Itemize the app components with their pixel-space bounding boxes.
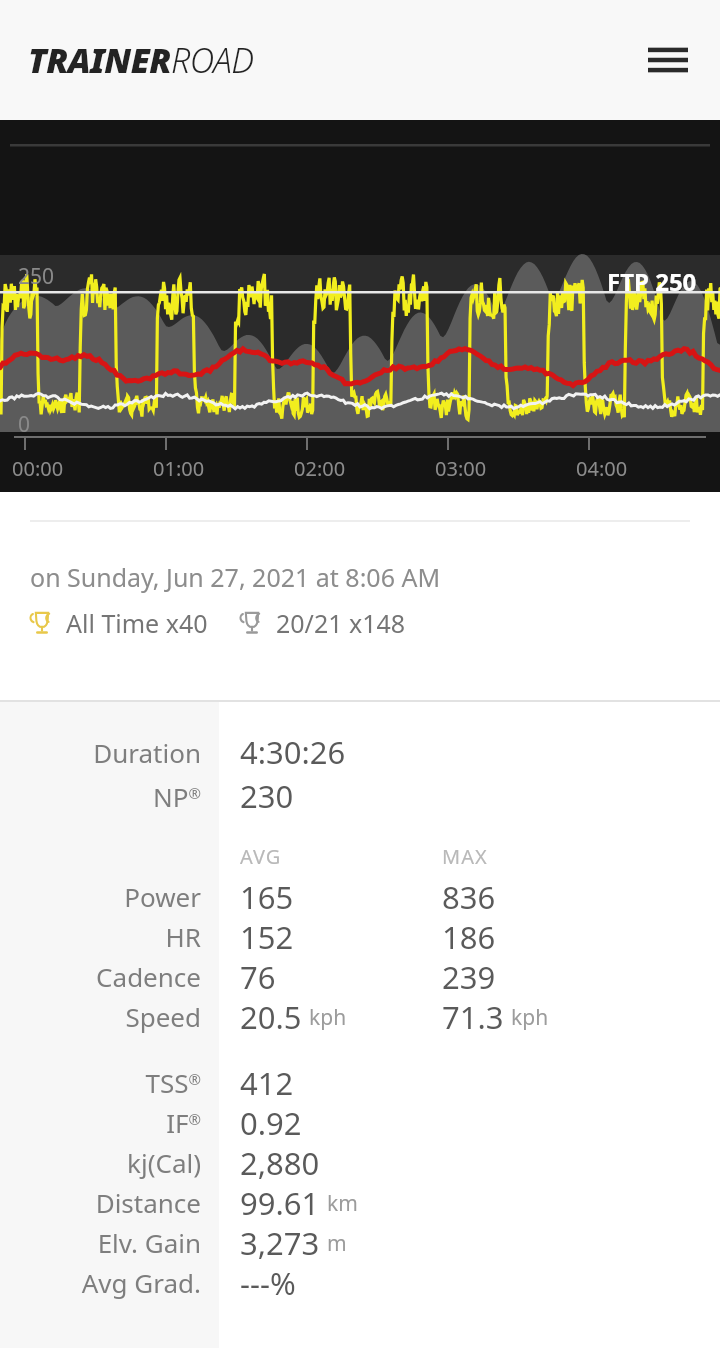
staticText: 0.92: [240, 1102, 302, 1142]
staticText: Distance: [95, 1185, 201, 1220]
button[interactable]: Menu: [640, 32, 696, 88]
staticText: Power: [124, 879, 201, 914]
staticText: km: [327, 1189, 358, 1218]
staticText: 04:00: [576, 455, 628, 482]
staticText: Duration: [93, 735, 201, 770]
staticText: TSS®: [145, 1065, 201, 1100]
staticText: 239: [442, 956, 496, 996]
staticText: FTP 250: [607, 265, 697, 298]
button[interactable]: Duration: [0, 730, 720, 774]
staticText: HR: [165, 919, 201, 954]
staticText: 2,880: [240, 1142, 320, 1182]
button[interactable]: Power: [0, 876, 720, 916]
staticText: MAX: [442, 843, 488, 870]
staticText: NP®: [153, 779, 201, 814]
button[interactable]: Distance: [0, 1182, 720, 1222]
staticText: All Time x40: [66, 606, 208, 640]
button[interactable]: TSS®: [0, 1062, 720, 1102]
button[interactable]: Trophy: [28, 606, 208, 640]
staticText: 03:00: [435, 455, 487, 482]
button[interactable]: NP®: [0, 774, 720, 818]
staticText: 152: [240, 916, 294, 956]
staticText: ---%: [240, 1262, 296, 1302]
button[interactable]: IF®: [0, 1102, 720, 1142]
button[interactable]: Trophy: [238, 606, 406, 640]
staticText: kj(Cal): [127, 1145, 201, 1180]
staticText: 01:00: [153, 455, 205, 482]
staticText: 20/21 x148: [276, 606, 406, 640]
button[interactable]: HR: [0, 916, 720, 956]
staticText: Elv. Gain: [97, 1225, 201, 1260]
staticText: 0: [18, 410, 31, 439]
staticText: 3,273: [240, 1222, 320, 1262]
staticText: on Sunday, Jun 27, 2021 at 8:06 AM: [30, 560, 441, 594]
button[interactable]: TRAINERROAD: [28, 37, 254, 83]
staticText: 76: [240, 956, 276, 996]
button[interactable]: Cadence: [0, 956, 720, 996]
other: Trophy: [238, 609, 266, 637]
staticText: IF®: [166, 1105, 201, 1140]
other: Trophy: [28, 609, 56, 637]
button[interactable]: Elv. Gain: [0, 1222, 720, 1262]
staticText: 71.3: [442, 996, 504, 1036]
staticText: 230: [240, 775, 294, 817]
staticText: 4:30:26: [240, 731, 346, 773]
staticText: 20.5: [240, 996, 302, 1036]
staticText: 00:00: [12, 455, 64, 482]
staticText: 250: [18, 262, 55, 291]
staticText: 165: [240, 876, 294, 916]
staticText: kph: [309, 1003, 347, 1032]
staticText: 186: [442, 916, 496, 956]
button[interactable]: Avg Grad.: [0, 1262, 720, 1302]
staticText: 412: [240, 1062, 294, 1102]
staticText: TRAINERROAD: [28, 37, 254, 83]
staticText: AVG: [240, 843, 282, 870]
staticText: 99.61: [240, 1182, 320, 1222]
staticText: Avg Grad.: [81, 1265, 201, 1300]
button[interactable]: Speed: [0, 996, 720, 1036]
staticText: 02:00: [294, 455, 346, 482]
staticText: m: [327, 1229, 347, 1258]
staticText: Cadence: [96, 959, 201, 994]
staticText: kph: [511, 1003, 549, 1032]
button[interactable]: kj(Cal): [0, 1142, 720, 1182]
staticText: 836: [442, 876, 496, 916]
staticText: Speed: [125, 999, 201, 1034]
